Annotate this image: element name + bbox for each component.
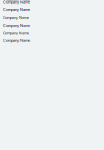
staticText: Company Name: [3, 15, 29, 20]
staticText: Company Name: [3, 23, 30, 28]
staticText: Company Name: [3, 0, 30, 4]
staticText: Company Name: [3, 7, 30, 12]
staticText: Company Name: [3, 31, 29, 35]
staticText: Company Name: [3, 38, 30, 43]
